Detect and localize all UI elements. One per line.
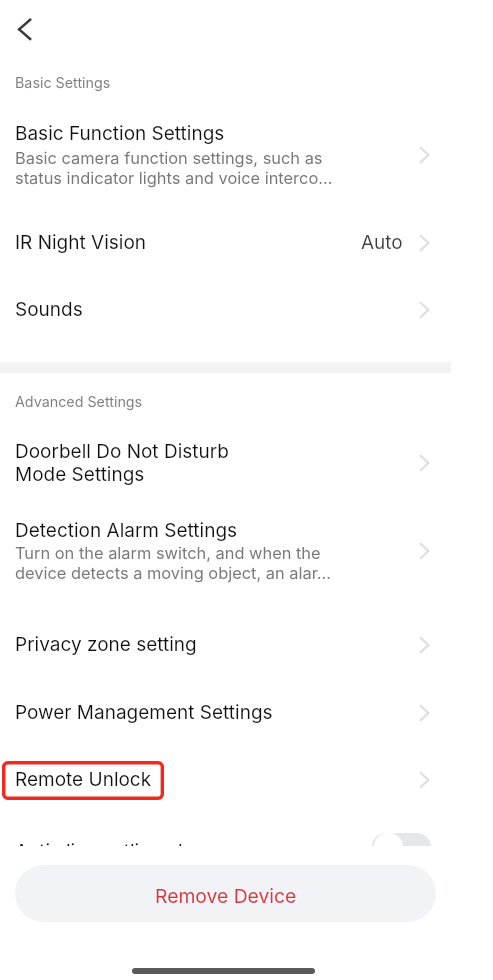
staticText: Auto [361,231,403,254]
staticText: Remove Device [155,884,297,907]
staticText: Privacy zone setting [15,633,411,656]
staticText: Advanced Settings [15,393,143,410]
button[interactable]: Basic Function Settings [0,101,451,209]
button[interactable]: Doorbell Do Not Disturb Mode Settings [0,419,451,507]
button[interactable]: Anti-dismantling alarm [0,818,451,846]
button[interactable]: Detection Alarm Settings [0,498,451,603]
staticText: Turn on the alarm switch, and when the d… [15,543,340,583]
button[interactable]: Back [5,10,45,50]
button[interactable]: Sounds [0,276,451,343]
other: Toggle [372,833,431,846]
staticText: IR Night Vision [15,231,361,254]
button[interactable]: Remove Device [15,865,436,922]
staticText: Basic Function Settings [15,122,225,145]
button[interactable]: Power Management Settings [0,679,451,746]
staticText: Basic camera function settings, such as … [15,148,340,188]
button[interactable]: Privacy zone setting [0,611,451,678]
button[interactable]: Remote Unlock [0,746,451,813]
staticText: Anti-dismantling alarm [15,840,218,846]
staticText: Detection Alarm Settings [15,519,238,542]
staticText: Doorbell Do Not Disturb Mode Settings [15,440,229,486]
staticText: Basic Settings [15,74,111,91]
button[interactable]: IR Night Vision [0,209,451,276]
staticText: Remote Unlock [15,768,411,791]
staticText: Sounds [15,298,411,321]
staticText: Power Management Settings [15,701,411,724]
